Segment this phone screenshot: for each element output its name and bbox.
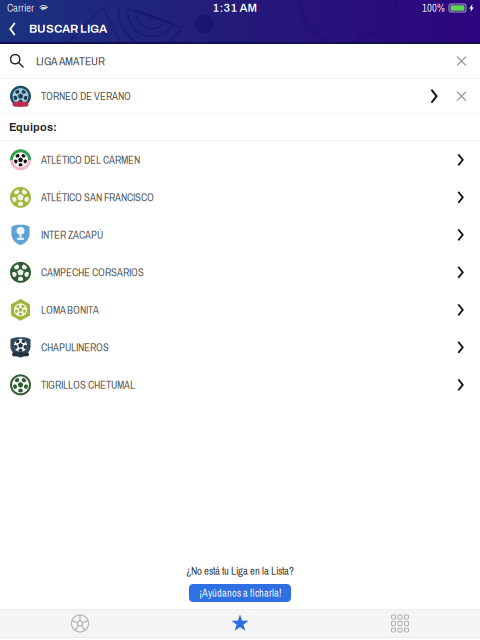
button[interactable]: INTER ZACAPÚ — [0, 216, 480, 254]
button[interactable]: Favoritos — [160, 609, 320, 637]
staticText: LOMA BONITA — [41, 303, 99, 317]
button[interactable]: ¡Ayúdanos a ficharla! — [189, 584, 291, 602]
staticText: BUSCAR LIGA — [29, 23, 107, 35]
button[interactable]: LIGA AMATEUR — [0, 44, 480, 78]
staticText: INTER ZACAPÚ — [41, 228, 103, 242]
staticText: Carrier — [7, 1, 34, 15]
staticText: ¿No está tu Liga en la Lista? — [186, 564, 294, 578]
button[interactable]: ATLÉTICO SAN FRANCISCO — [0, 179, 480, 216]
button[interactable]: TORNEO DE VERANO — [0, 79, 480, 114]
staticText: ATLÉTICO DEL CARMEN — [41, 153, 140, 167]
button[interactable]: ATLÉTICO DEL CARMEN — [0, 141, 480, 179]
button[interactable]: Partidos — [0, 609, 160, 637]
staticText: 100% — [422, 1, 445, 15]
button[interactable]: CHAPULINEROS — [0, 329, 480, 366]
button[interactable]: Back — [0, 16, 29, 42]
staticText: 1:31 AM — [212, 2, 257, 14]
staticText: ATLÉTICO SAN FRANCISCO — [41, 190, 154, 205]
staticText: ¡Ayúdanos a ficharla! — [199, 586, 281, 600]
staticText: TIGRILLOS CHETUMAL — [41, 378, 135, 392]
staticText: CAMPECHE CORSARIOS — [41, 265, 144, 280]
button[interactable]: LOMA BONITA — [0, 291, 480, 329]
button[interactable]: Más — [320, 609, 480, 637]
staticText: Equipos: — [9, 121, 57, 133]
staticText: CHAPULINEROS — [41, 340, 109, 355]
staticText: LIGA AMATEUR — [36, 53, 105, 69]
button[interactable]: CAMPECHE CORSARIOS — [0, 254, 480, 291]
button[interactable]: TIGRILLOS CHETUMAL — [0, 366, 480, 404]
staticText: TORNEO DE VERANO — [41, 89, 131, 103]
